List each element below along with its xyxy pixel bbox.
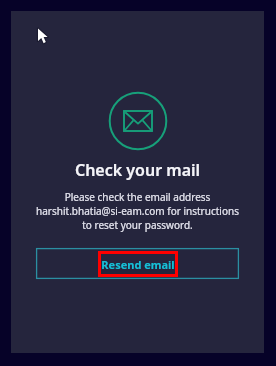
button[interactable]: Resend email: [36, 248, 239, 279]
staticText: Check your mail: [11, 159, 264, 181]
other: Mail sent: [108, 91, 168, 151]
staticText: Resend email: [101, 257, 175, 272]
staticText: Please check the email address harshit.b…: [32, 190, 243, 232]
